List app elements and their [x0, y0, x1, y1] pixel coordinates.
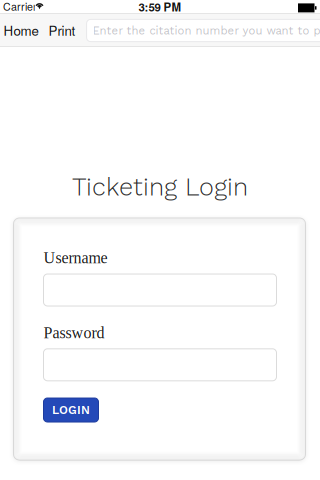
staticText: Home — [4, 20, 39, 40]
staticText: Ticketing Login — [72, 172, 248, 202]
staticText: Password — [43, 324, 104, 342]
button[interactable]: Enter the citation number you want to pr… — [87, 19, 320, 42]
button[interactable]: LOGIN — [43, 398, 98, 422]
staticText: 3:59 PM — [138, 0, 181, 15]
button[interactable] — [43, 274, 276, 306]
staticText: Username — [43, 249, 107, 267]
button[interactable]: Print — [48, 14, 81, 46]
staticText: Carrier — [3, 0, 37, 14]
button[interactable] — [43, 349, 276, 381]
staticText: Print — [48, 20, 75, 40]
staticText: LOGIN — [52, 403, 90, 417]
staticText: Enter the citation number you want to pr… — [92, 24, 320, 37]
button[interactable]: Home — [4, 14, 42, 46]
